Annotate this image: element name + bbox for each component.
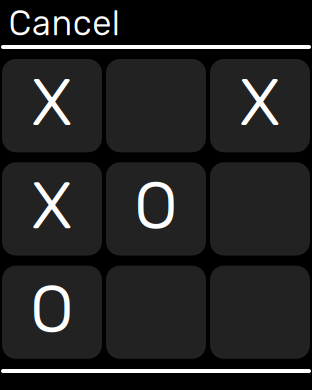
button[interactable]: O xyxy=(2,266,102,359)
staticText: X xyxy=(239,64,280,141)
staticText: Cancel xyxy=(8,3,120,44)
button[interactable]: Empty square xyxy=(210,266,310,359)
button[interactable]: Cancel xyxy=(0,0,312,45)
button[interactable]: X xyxy=(2,59,102,152)
button[interactable]: Empty square xyxy=(106,266,206,359)
staticText: O xyxy=(30,270,74,348)
button[interactable]: Empty square xyxy=(106,59,206,152)
staticText: X xyxy=(31,64,72,141)
button[interactable]: O xyxy=(106,162,206,256)
button[interactable]: X xyxy=(2,162,102,256)
staticText: O xyxy=(134,167,178,245)
button[interactable]: Empty square xyxy=(210,162,310,256)
staticText: X xyxy=(31,167,72,245)
button[interactable]: X xyxy=(210,59,310,152)
